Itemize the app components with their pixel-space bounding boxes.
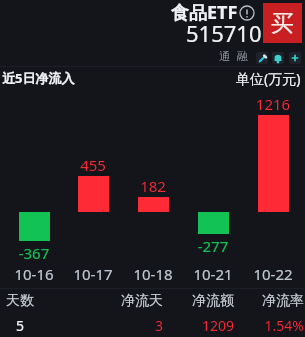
staticText: 10-16 [4,264,64,284]
button[interactable]: 买 [263,3,302,43]
staticText: 买 [271,9,294,38]
button[interactable]: Add [289,52,301,64]
staticText: 单位(万元) [236,69,301,88]
staticText: 通 [219,49,230,63]
button[interactable]: 天数 [6,292,34,335]
staticText: 1209 [163,316,234,335]
button[interactable]: 净流率 [233,292,304,335]
staticText: -367 [4,243,64,263]
staticText: -277 [183,236,243,256]
staticText: 182 [123,176,183,196]
staticText: 食品ETF [171,0,238,25]
button[interactable]: Edit [256,52,268,64]
staticText: 10-17 [63,264,123,284]
staticText: 近5日净流入 [2,69,75,87]
staticText: 融 [237,49,248,63]
staticText: 净流率 [233,292,304,310]
staticText: 1.54% [233,316,304,335]
staticText: 净流天 [92,292,163,310]
staticText: 515710 [186,18,262,48]
button[interactable]: 净流额 [163,292,234,335]
staticText: 天数 [6,292,34,310]
staticText: 10-21 [183,264,243,284]
staticText: 1216 [243,94,303,114]
staticText: 455 [63,155,123,175]
staticText: 净流额 [163,292,234,310]
button[interactable]: Alerts [272,52,284,64]
staticText: 3 [92,316,163,335]
staticText: 5 [6,316,34,335]
button[interactable]: 净流天 [92,292,163,335]
staticText: 10-22 [243,264,303,284]
staticText: 10-18 [123,264,183,284]
